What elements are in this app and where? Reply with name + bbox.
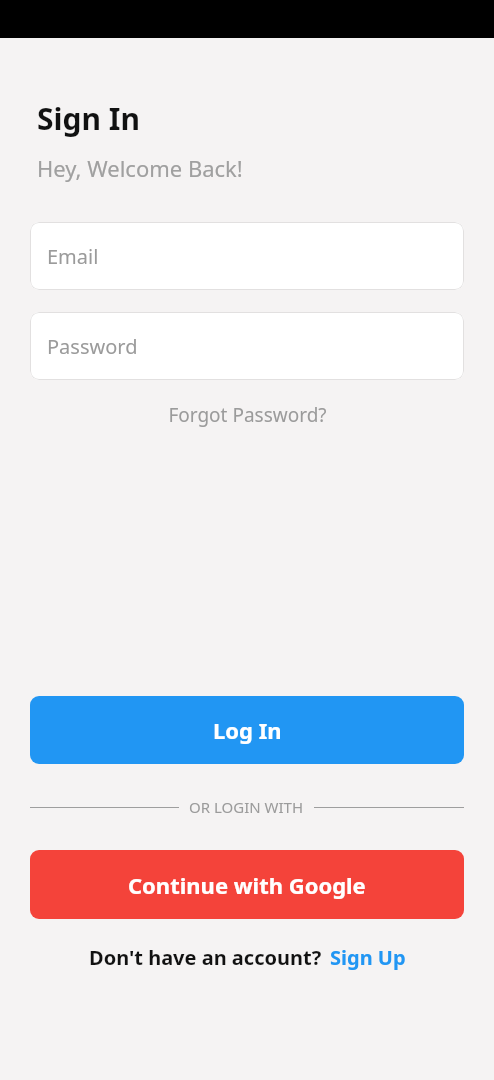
button[interactable]: Email: [30, 222, 464, 290]
staticText: Don't have an account?: [89, 944, 322, 971]
staticText: Forgot Password?: [168, 402, 327, 428]
button[interactable]: Log In: [30, 696, 464, 764]
button[interactable]: Forgot Password?: [0, 402, 494, 428]
staticText: Hey, Welcome Back!: [37, 153, 243, 183]
button[interactable]: Sign Up: [330, 944, 406, 971]
staticText: Password: [47, 333, 138, 360]
staticText: Continue with Google: [128, 870, 366, 900]
staticText: Email: [47, 243, 99, 270]
staticText: OR LOGIN WITH: [189, 797, 304, 817]
button[interactable]: Password: [30, 312, 464, 380]
staticText: Sign In: [37, 98, 140, 139]
button[interactable]: Continue with Google: [30, 850, 464, 919]
staticText: Sign Up: [330, 944, 406, 971]
staticText: Log In: [213, 715, 282, 745]
